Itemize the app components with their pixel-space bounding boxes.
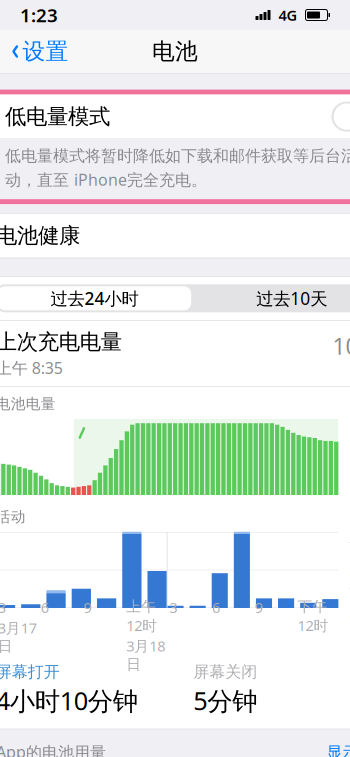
staticText: 60分钟 [349, 515, 350, 552]
staticText: 低电量模式将暂时降低如下载和邮件获取等后台活动，直至 iPhone完全充电。 [5, 146, 350, 190]
staticText: 设置 [23, 38, 69, 65]
staticText: App的电池用量 [0, 741, 106, 757]
staticText: 3 [169, 597, 177, 617]
staticText: 4小时10分钟 [0, 684, 138, 717]
button[interactable]: 过去24小时 [0, 284, 193, 312]
button[interactable]: 过去10天 [193, 284, 350, 312]
staticText: 上次充电电量 [0, 329, 122, 355]
staticText: 屏幕打开 [0, 662, 60, 682]
button[interactable]: 显示活动 [326, 743, 350, 757]
staticText: 低电量模式 [5, 103, 110, 130]
staticText: 下午 12时 [298, 597, 329, 635]
button[interactable]: 设置 [0, 32, 69, 71]
button[interactable]: 电池健康 [0, 214, 350, 258]
staticText: 6 [212, 597, 220, 617]
staticText: 电池电量 [0, 395, 56, 413]
staticText: 活动 [0, 508, 26, 526]
staticText: 上午 8:35 [0, 357, 63, 378]
staticText: 6 [41, 597, 49, 617]
staticText: 显示活动 [326, 743, 350, 757]
staticText: 1:23 [20, 3, 58, 27]
staticText: 电池健康 [0, 223, 80, 249]
staticText: 30分钟 [349, 560, 350, 598]
staticText: 3月17日 [0, 618, 37, 655]
staticText: 过去10天 [256, 287, 327, 310]
staticText: 屏幕关闭 [193, 662, 257, 682]
staticText: 5分钟 [193, 684, 257, 717]
button[interactable]: 低电量模式 [0, 95, 350, 139]
staticText: 上午 12时 [126, 597, 157, 635]
staticText: 3月18日 [126, 636, 165, 673]
staticText: 过去24小时 [50, 287, 138, 310]
staticText: 电池 [152, 38, 198, 65]
staticText: 3 [0, 597, 6, 617]
staticText: 100% [332, 331, 350, 361]
staticText: 9 [83, 597, 91, 617]
staticText: 4G [278, 5, 297, 25]
staticText: 9 [255, 597, 263, 617]
